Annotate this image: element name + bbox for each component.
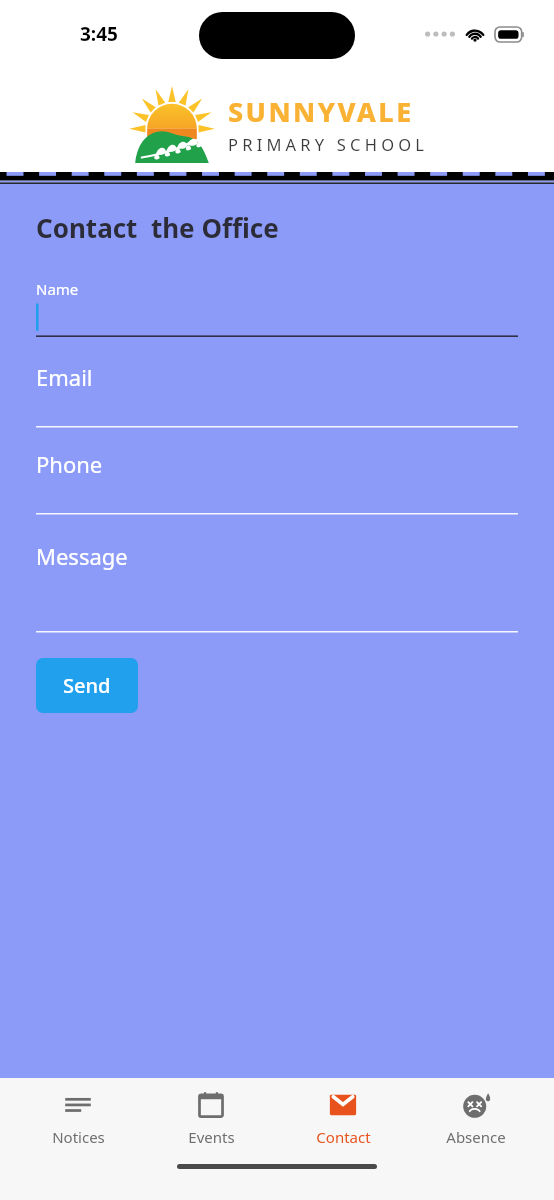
staticText: Absence: [446, 1127, 506, 1147]
staticText: Email: [36, 362, 93, 392]
staticText: Contact the Office: [36, 210, 279, 245]
button[interactable]: Absence: [421, 1085, 531, 1151]
button[interactable]: Send: [36, 658, 138, 713]
staticText: 3:45: [80, 21, 118, 47]
staticText: Events: [188, 1127, 235, 1147]
other: Notices: [62, 1089, 94, 1121]
staticText: SUNNYVALE: [228, 93, 414, 130]
button[interactable]: Notices: [23, 1085, 133, 1151]
button[interactable]: Phone: [36, 449, 518, 515]
button[interactable]: [36, 299, 518, 337]
button[interactable]: Events: [156, 1085, 266, 1151]
staticText: Send: [63, 672, 111, 699]
staticText: Phone: [36, 449, 103, 479]
other: Contact: [327, 1089, 359, 1121]
staticText: Message: [36, 541, 128, 571]
button[interactable]: Email: [36, 362, 518, 428]
staticText: PRIMARY SCHOOL: [228, 133, 429, 155]
staticText: Name: [36, 279, 79, 299]
staticText: Notices: [52, 1127, 105, 1147]
button[interactable]: Message: [36, 541, 518, 633]
other: Events: [195, 1089, 227, 1121]
button[interactable]: Contact: [288, 1085, 398, 1151]
other: Absence: [460, 1089, 492, 1121]
staticText: Contact: [316, 1127, 371, 1147]
